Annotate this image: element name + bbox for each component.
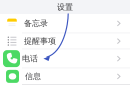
button[interactable]: 电话	[0, 49, 130, 68]
staticText: 备忘录	[24, 18, 48, 28]
staticText: 信息	[25, 71, 41, 81]
staticText: 提醒事项	[24, 36, 56, 46]
staticText: 设置	[57, 2, 73, 12]
staticText: 电话	[22, 54, 38, 63]
button[interactable]: 设置	[0, 0, 130, 14]
button[interactable]: 信息	[0, 68, 130, 85]
button[interactable]: 备忘录	[0, 14, 130, 33]
button[interactable]: 提醒事项	[0, 33, 130, 49]
